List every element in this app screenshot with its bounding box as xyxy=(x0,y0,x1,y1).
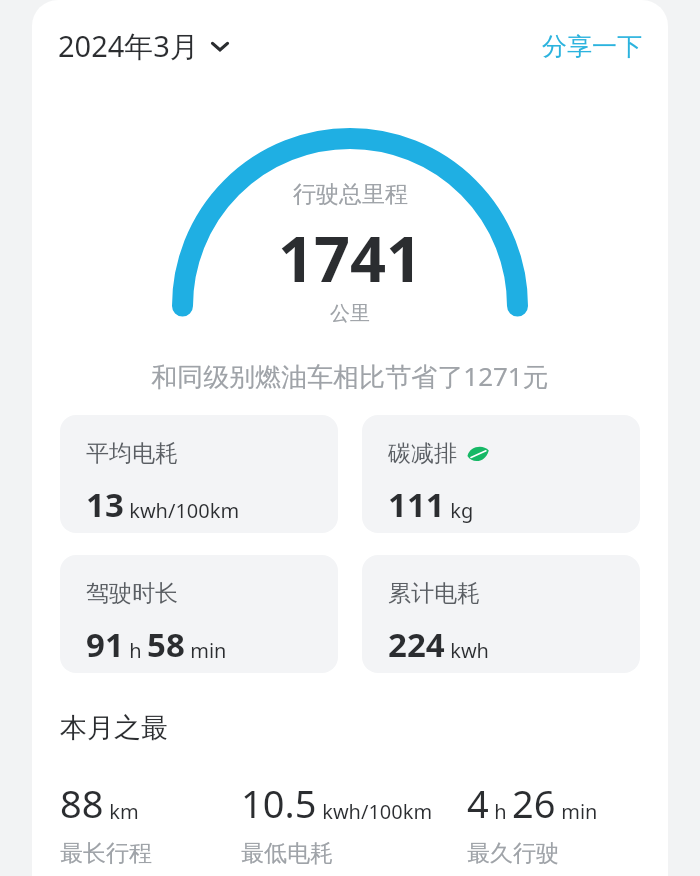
staticText: 1741 xyxy=(278,215,423,301)
button[interactable]: 累计电耗 xyxy=(362,555,640,673)
staticText: km xyxy=(104,798,139,825)
staticText: 58 xyxy=(147,622,185,667)
staticText: 本月之最 xyxy=(60,711,168,745)
staticText: 224 xyxy=(388,622,445,667)
button[interactable]: 4 xyxy=(467,777,648,868)
staticText: 分享一下 xyxy=(542,31,642,62)
staticText: 91 xyxy=(86,622,124,667)
staticText: 行驶总里程 xyxy=(293,180,408,209)
staticText: 最久行驶 xyxy=(467,839,559,868)
staticText: kg xyxy=(445,497,474,524)
staticText: kwh xyxy=(445,637,489,664)
button[interactable]: 碳减排 xyxy=(362,415,640,533)
staticText: 13 xyxy=(86,482,124,527)
button[interactable]: 88 xyxy=(60,777,241,868)
staticText: min xyxy=(556,798,598,825)
staticText: 平均电耗 xyxy=(86,439,178,468)
staticText: h xyxy=(489,798,512,825)
staticText: 最长行程 xyxy=(60,839,152,868)
button[interactable]: 10.5 xyxy=(241,777,467,868)
button[interactable]: 平均电耗 xyxy=(60,415,338,533)
button[interactable]: 驾驶时长 xyxy=(60,555,338,673)
staticText: kwh/100km xyxy=(317,798,433,825)
staticText: 2024年3月 xyxy=(58,26,199,66)
staticText: h xyxy=(124,637,147,664)
staticText: 111 xyxy=(388,482,445,527)
staticText: 最低电耗 xyxy=(241,839,333,868)
staticText: min xyxy=(185,637,227,664)
staticText: 驾驶时长 xyxy=(86,579,178,608)
button[interactable]: 分享一下 xyxy=(536,23,648,70)
button[interactable]: 2024年3月 xyxy=(54,20,235,72)
staticText: 和同级别燃油车相比节省了1271元 xyxy=(151,358,549,394)
staticText: 26 xyxy=(512,777,556,829)
staticText: kwh/100km xyxy=(124,497,240,524)
staticText: 88 xyxy=(60,777,104,829)
staticText: 公里 xyxy=(330,301,370,326)
staticText: 4 xyxy=(467,777,489,829)
staticText: 碳减排 xyxy=(388,439,457,468)
staticText: 累计电耗 xyxy=(388,579,480,608)
staticText: 10.5 xyxy=(241,777,317,829)
